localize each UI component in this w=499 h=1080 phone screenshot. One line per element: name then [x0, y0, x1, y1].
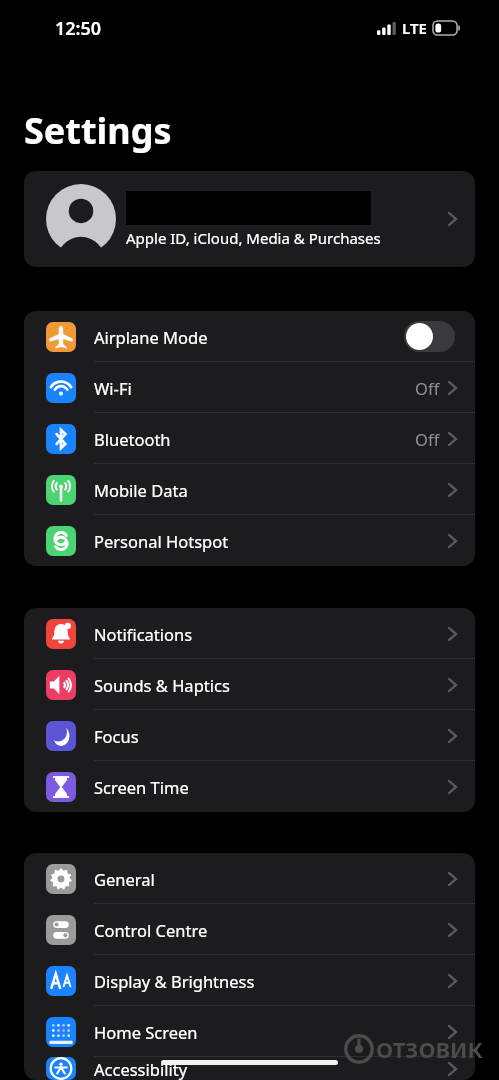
staticText: Control Centre	[94, 919, 208, 941]
staticText: Accessibility	[94, 1058, 188, 1080]
staticText: Personal Hotspot	[94, 530, 229, 552]
button[interactable]: Display & Brightness	[24, 955, 475, 1006]
button[interactable]: Notifications	[24, 608, 475, 659]
staticText: LTE	[402, 18, 427, 38]
staticText: Apple ID, iCloud, Media & Purchases	[126, 228, 381, 248]
button[interactable]: Airplane Mode	[24, 311, 475, 362]
button[interactable]: General	[24, 853, 475, 904]
button[interactable]: Focus	[24, 710, 475, 761]
staticText: Focus	[94, 725, 139, 747]
staticText: Bluetooth	[94, 428, 171, 450]
staticText: Wi-Fi	[94, 377, 132, 399]
staticText: Notifications	[94, 623, 193, 645]
button[interactable]: Sounds & Haptics	[24, 659, 475, 710]
staticText: Screen Time	[94, 776, 189, 798]
button[interactable]: Airplane Mode toggle, off	[404, 321, 455, 352]
staticText: Off	[415, 377, 440, 399]
staticText: Mobile Data	[94, 479, 188, 501]
button[interactable]: Apple ID, iCloud, Media & Purchases	[24, 171, 475, 267]
staticText: Off	[415, 428, 440, 450]
staticText: Display & Brightness	[94, 970, 255, 992]
staticText: Airplane Mode	[94, 326, 208, 348]
button[interactable]: Control Centre	[24, 904, 475, 955]
button[interactable]: Bluetooth	[24, 413, 475, 464]
staticText: Sounds & Haptics	[94, 674, 230, 696]
button[interactable]: Mobile Data	[24, 464, 475, 515]
button[interactable]: Personal Hotspot	[24, 515, 475, 566]
staticText: ОТЗОВИК	[376, 1034, 483, 1064]
button[interactable]: Home Screen	[24, 1006, 475, 1057]
staticText: Settings	[24, 106, 172, 155]
staticText: 12:50	[55, 16, 102, 41]
staticText: Home Screen	[94, 1021, 198, 1043]
button[interactable]: Screen Time	[24, 761, 475, 812]
button[interactable]: Accessibility	[24, 1057, 475, 1080]
button[interactable]: Wi-Fi	[24, 362, 475, 413]
staticText: General	[94, 868, 155, 890]
